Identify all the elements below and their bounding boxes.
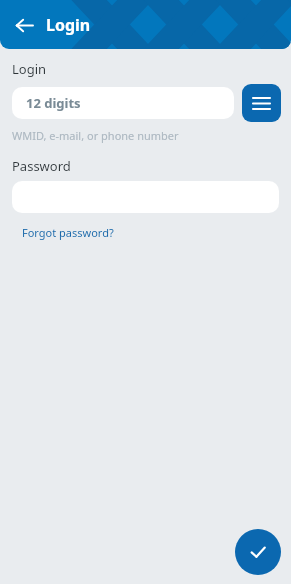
staticText: 12 digits bbox=[26, 94, 81, 112]
staticText: Forgot password? bbox=[22, 225, 114, 240]
button[interactable]: Menu bbox=[242, 84, 281, 122]
button[interactable]: Forgot password? bbox=[22, 225, 114, 240]
staticText: WMID, e-mail, or phone number bbox=[12, 128, 179, 143]
staticText: Password bbox=[12, 157, 71, 175]
button[interactable]: Back bbox=[10, 11, 38, 39]
button[interactable]: 12 digits bbox=[12, 87, 234, 119]
staticText: Login bbox=[12, 60, 47, 78]
button[interactable]: Confirm bbox=[235, 529, 281, 575]
staticText: Login bbox=[46, 14, 91, 36]
